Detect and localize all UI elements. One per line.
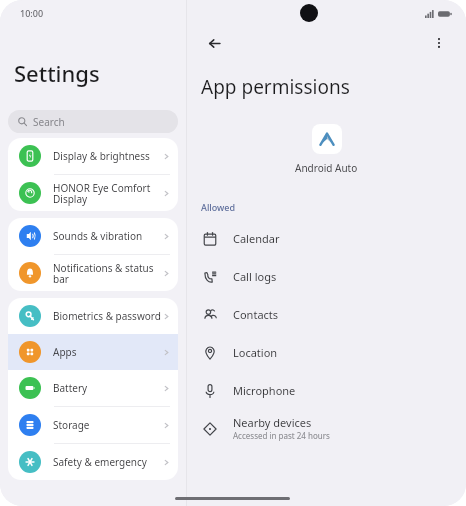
button[interactable]: Call logs (187, 257, 466, 295)
button[interactable]: Sounds & vibration (8, 218, 178, 254)
staticText: Biometrics & password (53, 309, 162, 323)
button[interactable]: Microphone (187, 371, 466, 409)
button[interactable]: Contacts (187, 295, 466, 333)
staticText: Notifications & status bar (53, 261, 162, 286)
staticText: 10:00 (20, 7, 44, 19)
button[interactable]: HONOR Eye Comfort Display (8, 175, 178, 211)
staticText: Allowed (201, 201, 236, 213)
button[interactable]: Apps (8, 334, 178, 370)
staticText: Settings (14, 58, 100, 88)
staticText: App permissions (201, 74, 350, 100)
staticText: Nearby devices (233, 415, 312, 430)
button[interactable]: Storage (8, 407, 178, 443)
staticText: Apps (53, 345, 162, 359)
staticText: Contacts (233, 307, 279, 322)
button[interactable]: Battery (8, 370, 178, 406)
staticText: Call logs (233, 269, 277, 284)
button[interactable]: Safety & emergency (8, 444, 178, 480)
button[interactable]: Display & brightness (8, 138, 178, 174)
staticText: Safety & emergency (53, 455, 162, 469)
button[interactable]: Biometrics & password (8, 298, 178, 334)
staticText: Location (233, 345, 278, 360)
staticText: Display & brightness (53, 149, 162, 163)
staticText: Calendar (233, 231, 280, 246)
staticText: Sounds & vibration (53, 229, 162, 243)
staticText: Battery (53, 381, 162, 395)
button[interactable]: Notifications & status bar (8, 255, 178, 291)
button[interactable]: Location (187, 333, 466, 371)
button[interactable]: Back (201, 30, 227, 56)
staticText: Accessed in past 24 hours (233, 430, 330, 441)
staticText: Storage (53, 418, 162, 432)
button[interactable]: Search (8, 110, 178, 133)
button[interactable]: Calendar (187, 219, 466, 257)
staticText: Microphone (233, 383, 296, 398)
button[interactable]: Nearby devices (187, 409, 466, 447)
staticText: HONOR Eye Comfort Display (53, 181, 162, 206)
staticText: Android Auto (295, 161, 358, 175)
button[interactable]: More options (426, 30, 452, 56)
staticText: Search (33, 115, 65, 129)
